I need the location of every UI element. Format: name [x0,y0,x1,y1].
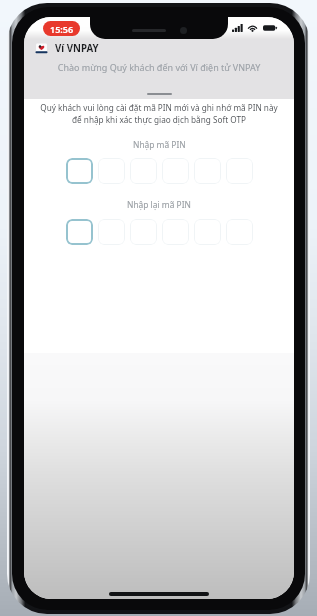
button[interactable]: PIN digit 3 [130,219,157,245]
button[interactable]: PIN digit 3 [130,158,157,184]
button[interactable]: PIN digit 4 [162,219,189,245]
button[interactable]: PIN digit 4 [162,158,189,184]
button[interactable]: PIN digit 6 [226,219,253,245]
button[interactable]: PIN digit 1 [66,158,93,184]
staticText: Nhập mã PIN [133,139,186,150]
button[interactable]: PIN digit 5 [194,158,221,184]
button[interactable]: PIN digit 5 [194,219,221,245]
button[interactable]: PIN digit 6 [226,158,253,184]
staticText: Chào mừng Quý khách đến với Ví điện tử V… [24,61,294,73]
button[interactable]: PIN digit 2 [98,219,125,245]
staticText: Nhập lại mã PIN [127,199,191,210]
staticText: 15:56 [50,23,74,35]
button[interactable]: 15:56 [43,21,80,36]
staticText: Quý khách vui lòng cài đặt mã PIN mới và… [26,102,292,125]
button[interactable]: PIN digit 2 [98,158,125,184]
button[interactable]: PIN digit 1 [66,219,93,245]
staticText: Ví VNPAY [55,42,99,55]
